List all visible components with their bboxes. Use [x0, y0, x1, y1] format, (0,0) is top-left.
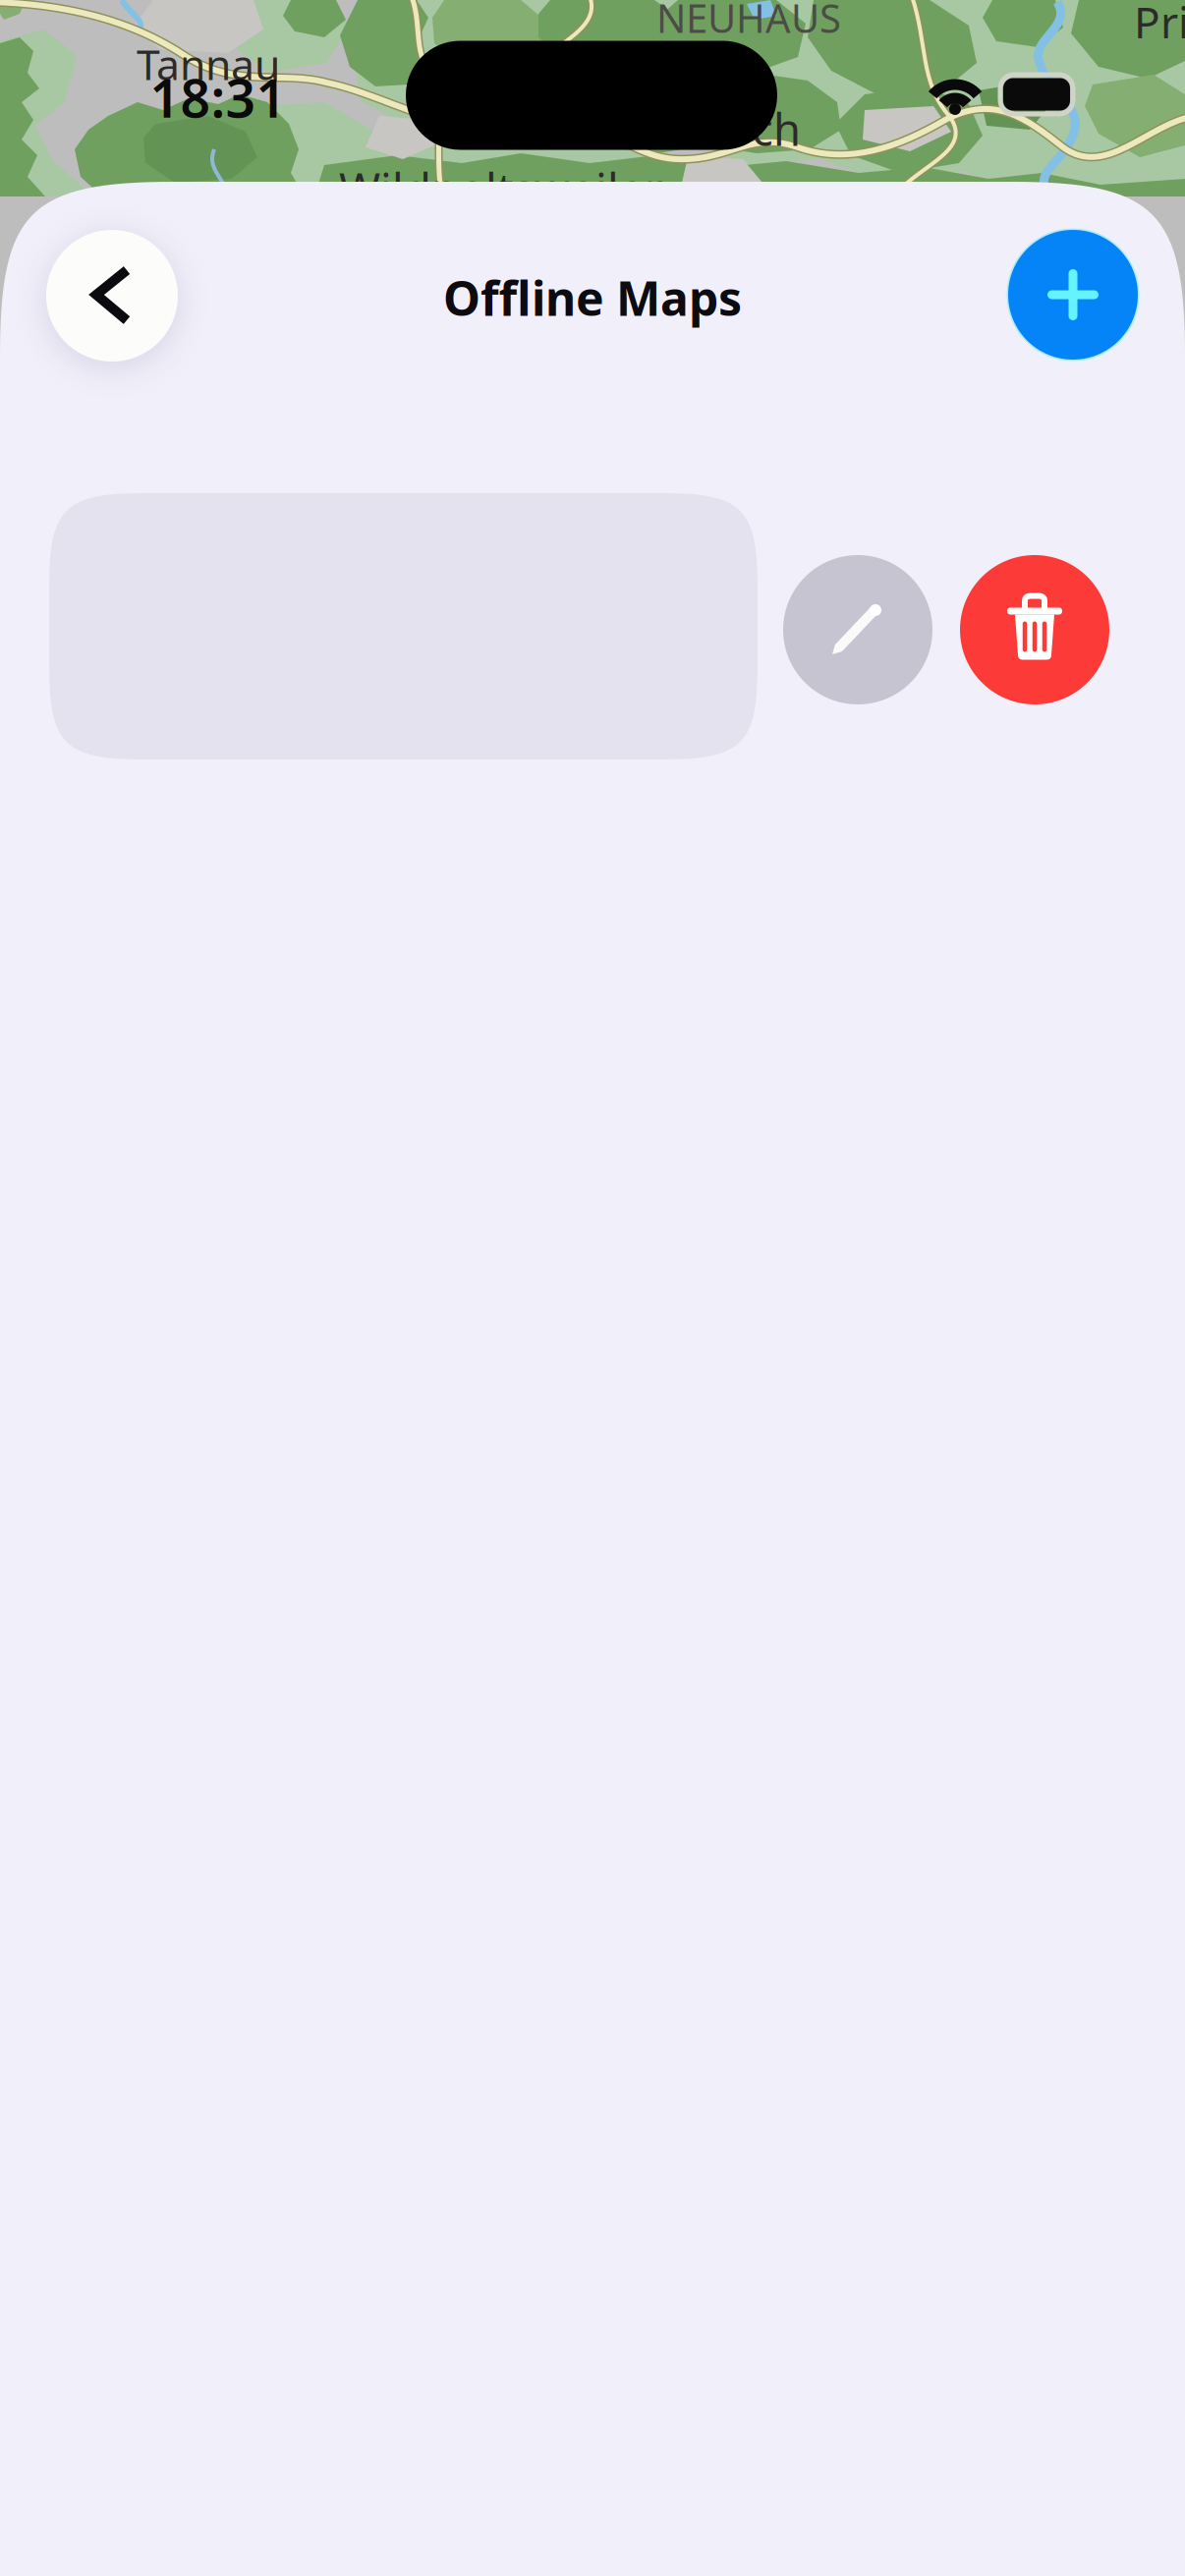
button[interactable]: Delete	[960, 555, 1109, 704]
staticText: Offline Maps	[443, 266, 742, 329]
staticText: Pri	[1134, 0, 1185, 50]
staticText: Tannau	[137, 36, 280, 92]
button[interactable]: Edit	[783, 555, 932, 704]
staticText: 18:31	[150, 62, 286, 132]
staticText: NEUHAUS	[656, 0, 841, 44]
staticText: Wildpoltsweiler	[339, 159, 663, 218]
button[interactable]: Add offline map	[1004, 226, 1142, 364]
staticText: ch	[752, 99, 801, 158]
button[interactable]: Back	[46, 230, 178, 362]
